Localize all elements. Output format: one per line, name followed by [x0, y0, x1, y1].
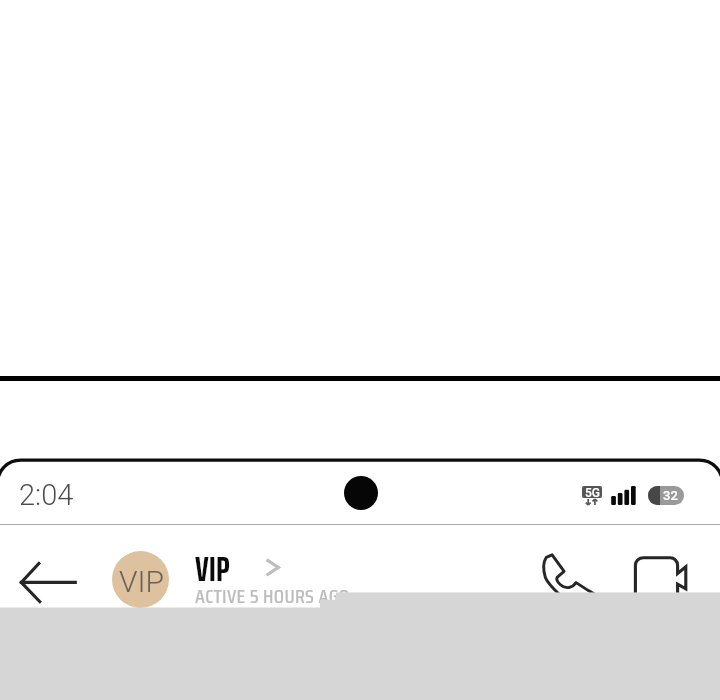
button[interactable]: VIP — [186, 544, 296, 588]
staticText: VIP — [195, 542, 230, 586]
staticText: ACTIVE 5 HOURS AGO — [195, 580, 350, 611]
button[interactable]: Video call — [620, 540, 706, 618]
staticText: 5G — [585, 486, 600, 498]
button[interactable]: VIP — [112, 551, 169, 608]
staticText: VIP — [119, 564, 164, 599]
button[interactable]: Call — [528, 540, 610, 618]
staticText: 2:04 — [19, 478, 74, 512]
staticText: 32 — [663, 488, 678, 503]
button[interactable]: Back — [4, 542, 96, 622]
